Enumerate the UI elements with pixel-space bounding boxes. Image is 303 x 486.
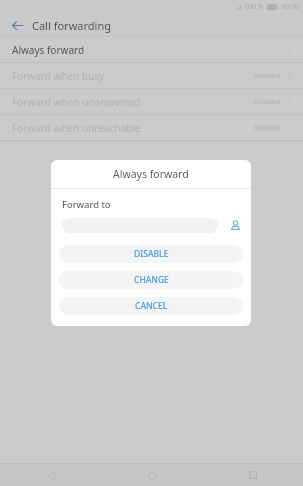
button[interactable]: CHANGE xyxy=(59,271,243,289)
button[interactable]: Always forward xyxy=(0,37,303,63)
staticText: Forward when unreachable xyxy=(12,121,141,135)
staticText: Disabled xyxy=(254,71,281,80)
button[interactable]: Choose contact xyxy=(227,217,243,233)
button[interactable]: Home xyxy=(141,464,163,486)
button[interactable]: DISABLE xyxy=(59,245,243,263)
button[interactable]: Forward when unreachable xyxy=(0,115,303,141)
staticText: Always forward xyxy=(12,43,85,57)
staticText: Disabled xyxy=(254,123,281,132)
staticText: 10:00 xyxy=(281,2,299,12)
button[interactable]: Back xyxy=(40,464,62,486)
staticText: 100 % xyxy=(244,2,264,12)
staticText: Disabled xyxy=(254,97,281,106)
button[interactable]: Recent apps xyxy=(242,464,264,486)
staticText: Forward to xyxy=(62,198,111,211)
staticText: Forward when unanswered xyxy=(12,95,141,109)
staticText: Call forwarding xyxy=(32,18,111,33)
staticText: CANCEL xyxy=(135,300,168,312)
staticText: CHANGE xyxy=(134,274,169,286)
staticText: Forward when busy xyxy=(12,69,105,83)
staticText: DISABLE xyxy=(134,248,169,260)
staticText: Always forward xyxy=(113,167,189,181)
button[interactable]: CANCEL xyxy=(59,297,243,315)
button[interactable]: Forward when busy xyxy=(0,63,303,89)
button[interactable]: Forward when unanswered xyxy=(0,89,303,115)
button[interactable]: Navigate up xyxy=(8,16,26,34)
